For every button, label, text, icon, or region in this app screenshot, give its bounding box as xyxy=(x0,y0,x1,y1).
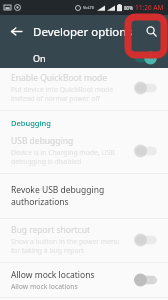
staticText: Debugging xyxy=(11,118,51,128)
staticText: Device is in Charging mode, USB debuggin… xyxy=(11,148,115,166)
button[interactable]: Revoke USB debugging authorizations xyxy=(0,174,168,218)
staticText: 80% xyxy=(124,5,133,11)
staticText: Bug report shortcut xyxy=(11,224,90,236)
staticText: Show a button in the power menu for taki… xyxy=(11,237,120,255)
staticText: Allow mock locations xyxy=(11,282,78,291)
staticText: USB debugging xyxy=(11,135,74,147)
button[interactable]: USB debugging xyxy=(0,132,168,173)
staticText: Enable QuickBoot mode xyxy=(11,72,108,84)
staticText: Put device into QuickBoot mode instead o… xyxy=(11,85,114,103)
button[interactable]: Bug report shortcut xyxy=(0,219,168,262)
staticText: Revoke USB debugging authorizations xyxy=(11,184,159,208)
staticText: 11:26 AM xyxy=(135,3,164,12)
button[interactable]: Allow mock locations xyxy=(0,263,168,297)
button[interactable]: Enable QuickBoot mode xyxy=(0,68,168,110)
staticText: On xyxy=(33,52,46,64)
button[interactable]: On xyxy=(33,48,158,68)
staticText: Allow mock locations xyxy=(11,269,95,281)
staticText: VoLTE xyxy=(83,5,95,10)
button[interactable]: Search xyxy=(135,15,168,48)
button[interactable]: Back xyxy=(0,15,33,48)
staticText: Developer options xyxy=(33,24,132,40)
